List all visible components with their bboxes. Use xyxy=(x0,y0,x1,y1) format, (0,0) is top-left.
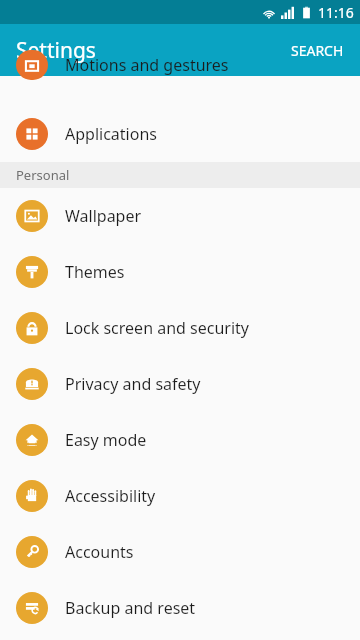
button[interactable]: Applications xyxy=(0,106,360,162)
staticText: Easy mode xyxy=(65,429,147,451)
staticText: Settings xyxy=(16,36,96,65)
button[interactable]: Wallpaper xyxy=(0,188,360,244)
button[interactable]: Privacy and safety xyxy=(0,356,360,412)
button[interactable]: Easy mode xyxy=(0,412,360,468)
button[interactable]: Motions and gestures xyxy=(0,76,360,106)
staticText: Themes xyxy=(65,261,125,283)
button[interactable]: Lock screen and security xyxy=(0,300,360,356)
staticText: 11:16 xyxy=(318,3,354,22)
button[interactable]: SEARCH xyxy=(275,29,360,72)
staticText: SEARCH xyxy=(291,41,344,60)
button[interactable]: Themes xyxy=(0,244,360,300)
staticText: Wallpaper xyxy=(65,205,142,227)
staticText: Privacy and safety xyxy=(65,373,201,395)
staticText: Personal xyxy=(16,166,70,184)
button[interactable]: Backup and reset xyxy=(0,580,360,636)
staticText: Accounts xyxy=(65,541,134,563)
button[interactable]: Accounts xyxy=(0,524,360,580)
staticText: Applications xyxy=(65,123,157,145)
button[interactable]: Accessibility xyxy=(0,468,360,524)
staticText: Lock screen and security xyxy=(65,317,249,339)
staticText: Backup and reset xyxy=(65,597,196,619)
staticText: Accessibility xyxy=(65,485,156,507)
staticText: Motions and gestures xyxy=(65,54,229,76)
